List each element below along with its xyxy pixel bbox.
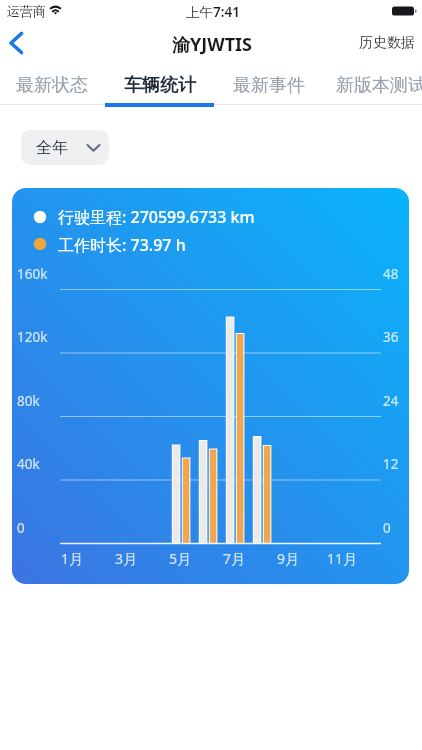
button[interactable]: 新版本测试 bbox=[328, 66, 422, 104]
staticText: 工作时长: 73.97 h bbox=[58, 234, 186, 256]
staticText: 1月 bbox=[61, 549, 84, 568]
button[interactable] bbox=[2, 29, 34, 59]
staticText: 行驶里程: 270599.6733 km bbox=[58, 206, 255, 228]
staticText: 36 bbox=[383, 328, 399, 346]
staticText: 最新事件 bbox=[233, 74, 305, 97]
staticText: 3月 bbox=[115, 549, 138, 568]
staticText: 新版本测试 bbox=[336, 74, 422, 97]
staticText: 11月 bbox=[327, 549, 358, 568]
staticText: 上午7:41 bbox=[186, 3, 240, 21]
button[interactable]: 最新事件 bbox=[216, 66, 322, 104]
staticText: 运营商 bbox=[7, 3, 46, 19]
button[interactable]: 车辆统计 bbox=[107, 66, 213, 104]
button[interactable]: 历史数据 bbox=[353, 31, 421, 55]
button[interactable]: 最新状态 bbox=[0, 66, 105, 104]
staticText: 0 bbox=[17, 519, 25, 537]
staticText: 历史数据 bbox=[359, 34, 415, 52]
staticText: 渝YJWTIS bbox=[172, 32, 252, 57]
staticText: 0 bbox=[383, 519, 391, 537]
staticText: 24 bbox=[383, 392, 399, 410]
staticText: 最新状态 bbox=[16, 74, 88, 97]
staticText: 40k bbox=[17, 455, 40, 473]
staticText: 160k bbox=[17, 265, 48, 283]
button[interactable]: 全年 bbox=[21, 130, 109, 165]
staticText: 80k bbox=[17, 392, 40, 410]
staticText: 120k bbox=[17, 328, 48, 346]
staticText: 9月 bbox=[277, 549, 300, 568]
staticText: 7月 bbox=[223, 549, 246, 568]
staticText: 12 bbox=[383, 455, 399, 473]
staticText: 5月 bbox=[169, 549, 192, 568]
staticText: 全年 bbox=[36, 138, 68, 158]
staticText: 48 bbox=[383, 265, 399, 283]
staticText: 车辆统计 bbox=[124, 74, 196, 97]
